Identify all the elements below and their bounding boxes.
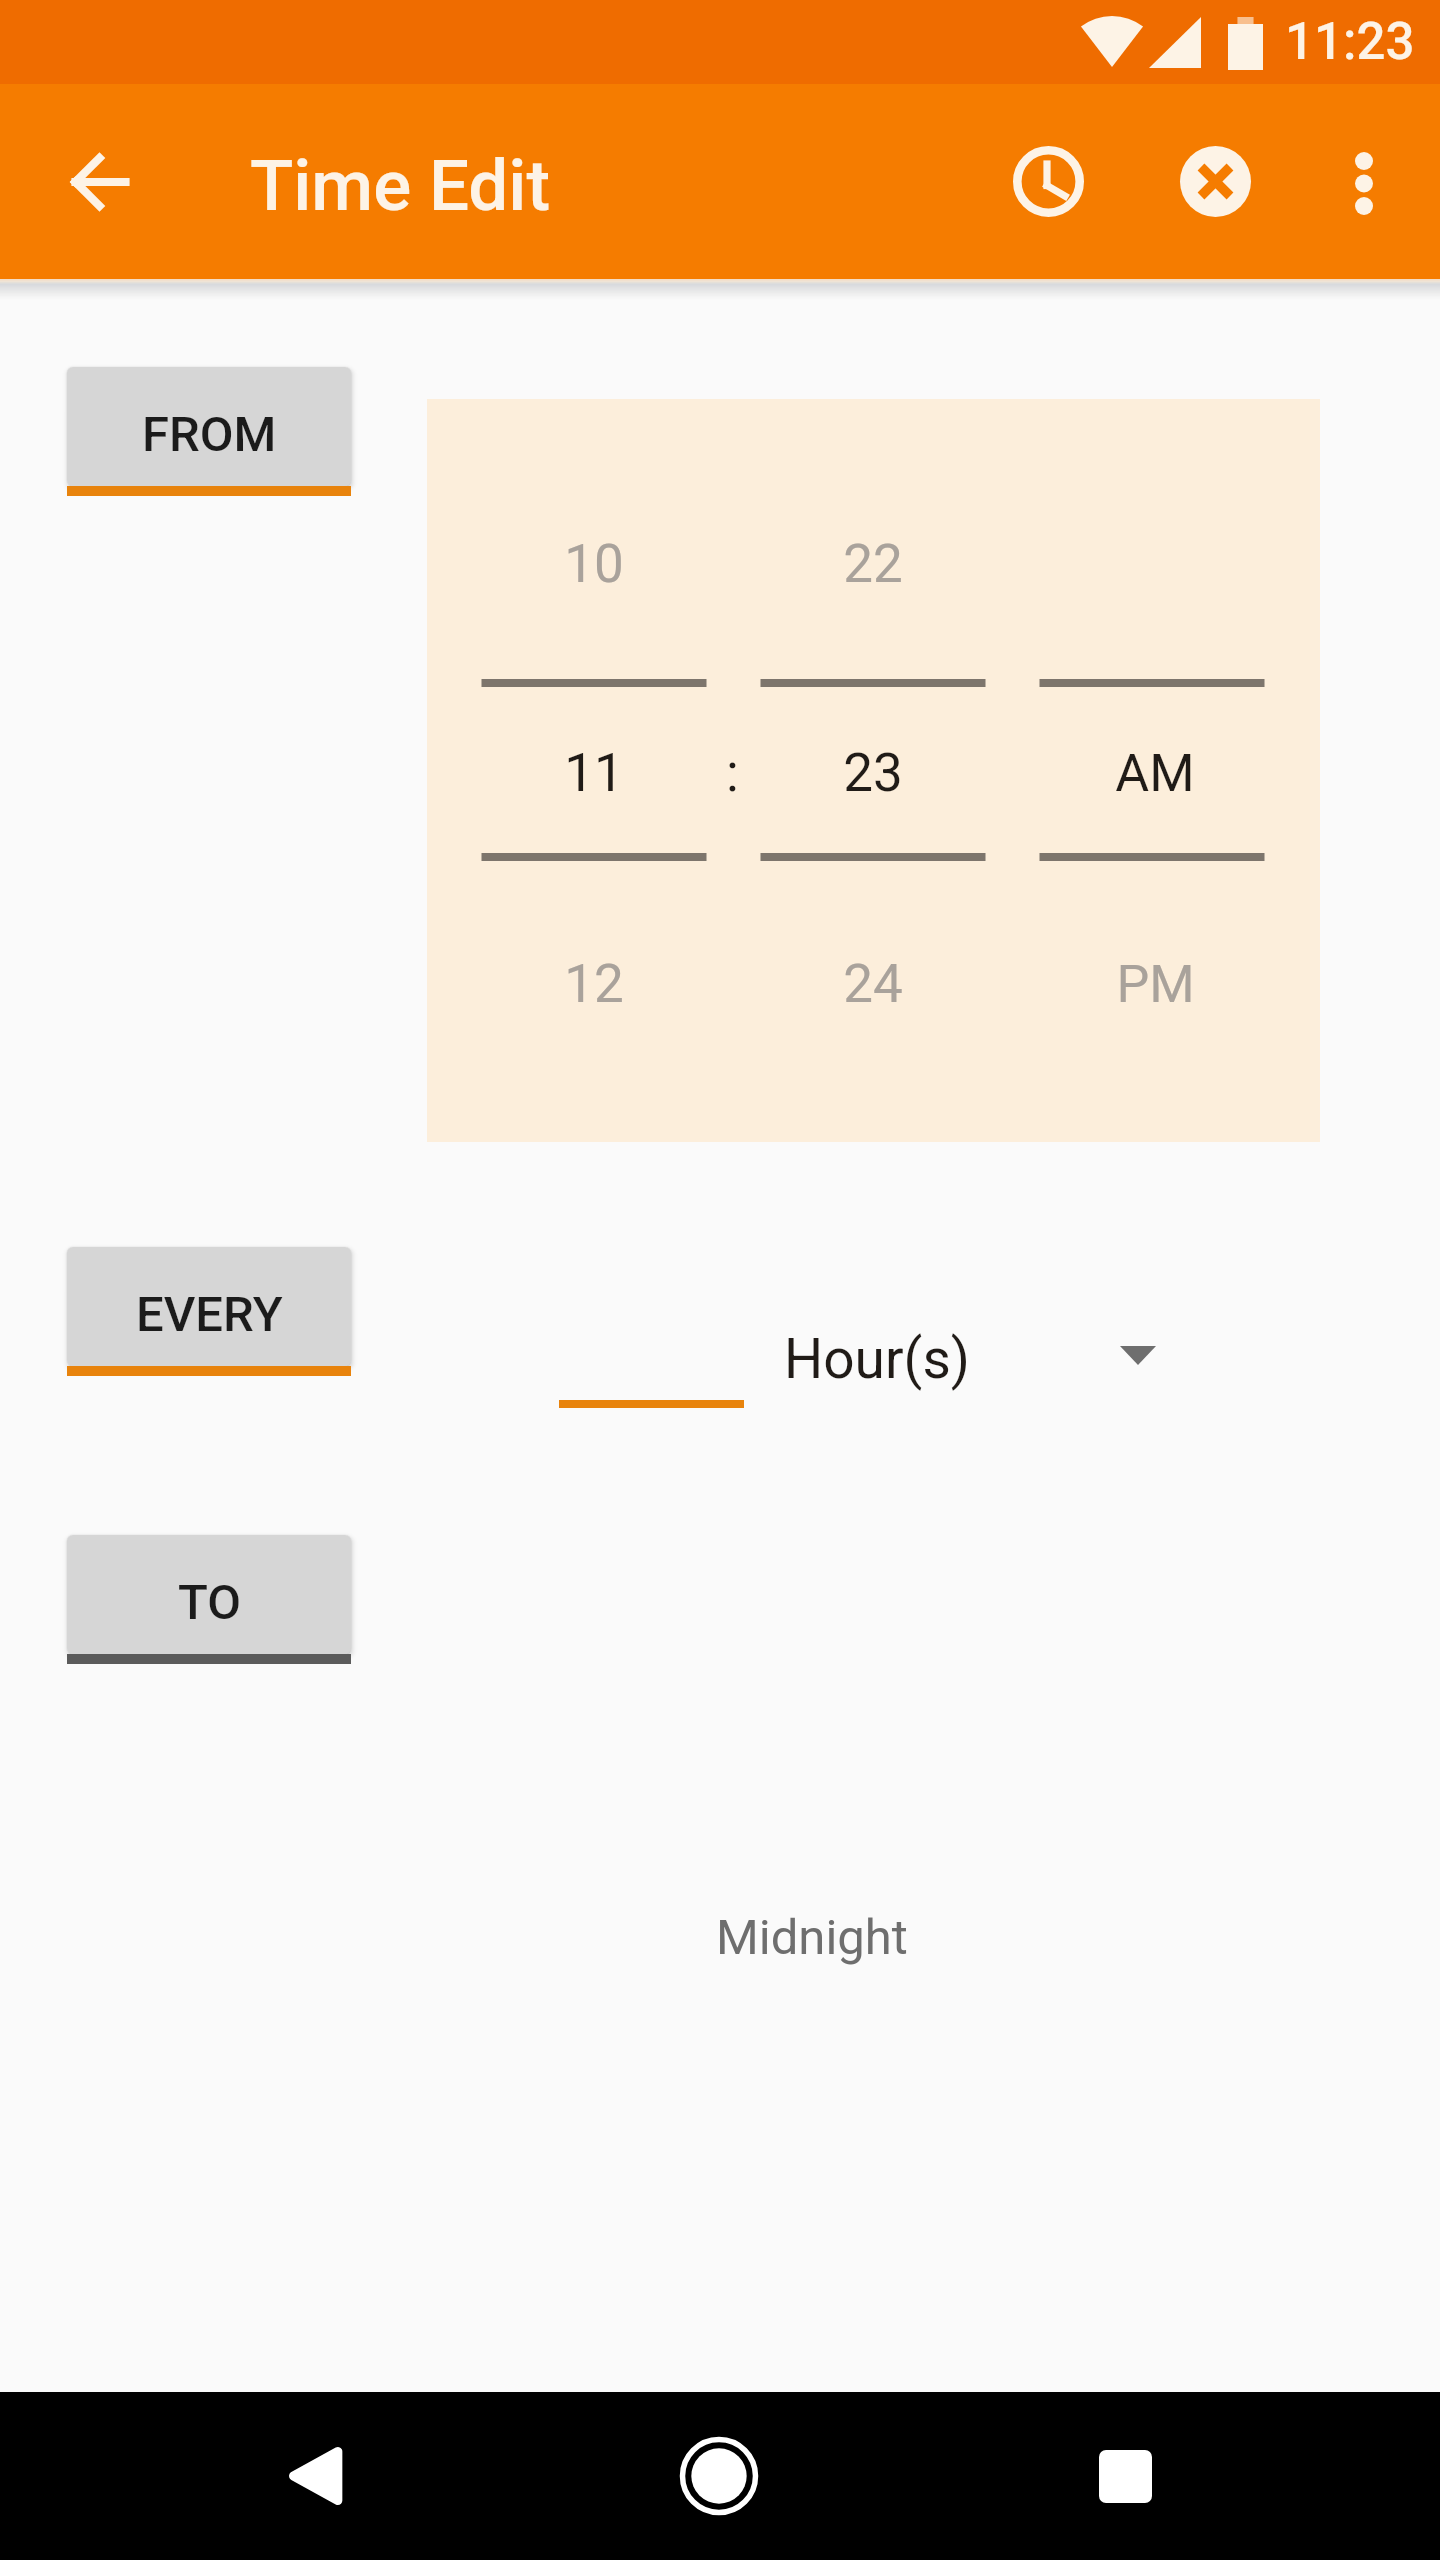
button[interactable]: Pick time xyxy=(978,111,1118,251)
staticText: EVERY xyxy=(136,1286,283,1343)
staticText: 12 xyxy=(564,953,624,1015)
button[interactable]: EVERY xyxy=(67,1247,351,1376)
button[interactable]: TO xyxy=(67,1535,351,1664)
button[interactable]: More options xyxy=(1299,118,1429,248)
button[interactable]: FROM xyxy=(67,367,351,496)
staticText: TO xyxy=(178,1574,241,1631)
staticText: 22 xyxy=(843,533,903,595)
staticText: 24 xyxy=(843,953,903,1015)
button[interactable]: Midnight xyxy=(716,1887,921,1987)
staticText: PM xyxy=(1116,954,1195,1015)
button[interactable]: Hour(s) xyxy=(784,1304,979,1414)
button[interactable]: Home xyxy=(649,2406,789,2546)
staticText: 23 xyxy=(843,742,903,804)
button[interactable]: Clear xyxy=(1145,111,1285,251)
staticText: Hour(s) xyxy=(784,1327,970,1391)
button[interactable]: Back xyxy=(245,2406,385,2546)
staticText: 11:23 xyxy=(1285,12,1415,72)
button[interactable] xyxy=(520,1300,782,1410)
staticText: 11 xyxy=(564,742,624,804)
staticText: FROM xyxy=(142,406,277,463)
button[interactable]: Select unit xyxy=(1092,1309,1184,1401)
button[interactable]: Recent apps xyxy=(1055,2406,1195,2546)
staticText: : xyxy=(726,742,739,804)
staticText: Midnight xyxy=(716,1909,908,1966)
staticText: 10 xyxy=(564,533,624,595)
staticText: AM xyxy=(1115,743,1195,804)
staticText: Time Edit xyxy=(250,144,551,227)
button[interactable]: Navigate up xyxy=(44,126,156,238)
